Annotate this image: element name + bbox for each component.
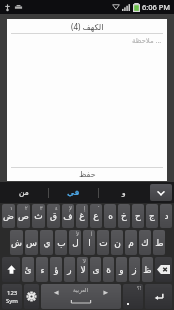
staticText: ظ	[143, 265, 152, 275]
staticText: و	[119, 265, 124, 275]
staticText: ف	[63, 211, 73, 221]
button[interactable]: ح	[132, 204, 144, 228]
button[interactable]: ة	[103, 257, 114, 282]
staticText: ح	[135, 211, 141, 221]
staticText: الكهف (4)	[71, 21, 104, 32]
button[interactable]: خ	[118, 204, 130, 228]
staticText: لأ	[76, 231, 79, 237]
staticText: ك	[141, 238, 149, 248]
staticText: ض	[3, 211, 14, 221]
staticText: و	[122, 188, 126, 197]
staticText: ط	[155, 238, 164, 248]
staticText: ١	[10, 205, 13, 211]
other: Space	[41, 284, 121, 309]
staticText: ٤	[55, 205, 58, 211]
staticText: ه	[108, 211, 113, 221]
button[interactable]: ه	[104, 204, 116, 228]
button[interactable]: ؤ	[50, 257, 62, 282]
staticText: س	[26, 238, 37, 248]
staticText: العربية	[73, 287, 89, 293]
button[interactable]: ء	[36, 257, 48, 282]
button[interactable]: أ	[83, 230, 95, 255]
staticText: لإ	[69, 205, 72, 211]
button[interactable]: لإ	[62, 204, 74, 228]
staticText: ؤ	[54, 265, 59, 275]
other: Backspace	[157, 265, 170, 274]
staticText: ر	[67, 265, 72, 275]
button[interactable]: إ	[76, 204, 88, 228]
button[interactable]: ش	[10, 230, 23, 255]
button[interactable]: `	[90, 204, 102, 228]
button[interactable]: ١	[2, 204, 15, 228]
button[interactable]: Settings	[24, 284, 39, 309]
staticText: خ	[121, 211, 127, 221]
button[interactable]: Shift	[2, 257, 20, 282]
staticText: ث	[34, 211, 43, 221]
button[interactable]: س	[25, 230, 38, 255]
staticText: ش	[11, 238, 22, 248]
button[interactable]: Enter	[145, 284, 172, 309]
other: Settings	[26, 291, 37, 302]
staticText: ة	[106, 265, 111, 275]
button[interactable]: ٤	[47, 204, 60, 228]
button[interactable]: د	[160, 204, 172, 228]
staticText: م	[128, 238, 134, 248]
button[interactable]: ك	[139, 230, 151, 255]
staticText: ص	[18, 211, 29, 221]
staticText: `	[98, 205, 100, 212]
staticText: ع	[93, 211, 99, 221]
button[interactable]: ج	[146, 204, 158, 228]
staticText: لآ	[83, 258, 86, 264]
other: Enter	[153, 291, 165, 303]
staticText: إ	[84, 205, 86, 211]
staticText: Sym	[6, 297, 18, 305]
button[interactable]: حفظ	[7, 168, 167, 181]
staticText: ب	[57, 238, 66, 248]
button[interactable]: Space	[41, 284, 121, 309]
staticText: ز	[132, 265, 137, 275]
button[interactable]: ى	[90, 257, 101, 282]
button[interactable]: في	[49, 182, 98, 203]
button[interactable]: لأ	[69, 230, 81, 255]
staticText: ج	[149, 211, 155, 221]
button[interactable]: ز	[129, 257, 140, 282]
button[interactable]: 123	[2, 284, 22, 309]
staticText: 123	[7, 289, 18, 297]
staticText: ن	[114, 238, 121, 248]
staticText: ء	[40, 265, 45, 275]
staticText: ا	[88, 238, 91, 248]
button[interactable]: لآ	[77, 257, 88, 282]
staticText: 6:06 PM	[142, 2, 171, 12]
staticText: ل	[72, 238, 79, 248]
button[interactable]: من	[0, 182, 48, 203]
button[interactable]: و	[99, 182, 148, 203]
staticText: ؟!	[137, 285, 141, 292]
button[interactable]: م	[125, 230, 137, 255]
staticText: ٣	[40, 205, 43, 211]
staticText: ي	[43, 238, 51, 248]
other: Shift	[6, 264, 17, 275]
button[interactable]: ٢	[17, 204, 30, 228]
button[interactable]: ت	[97, 230, 109, 255]
staticText: في	[67, 188, 80, 197]
staticText: حفظ	[79, 170, 96, 179]
button[interactable]: ي	[40, 230, 53, 255]
staticText: د	[164, 211, 169, 221]
button[interactable]: ؟!	[123, 284, 143, 309]
staticText: غ	[79, 211, 85, 221]
staticText: لا	[80, 265, 86, 275]
button[interactable]: ر	[64, 257, 75, 282]
button[interactable]: ط	[153, 230, 165, 255]
staticText: أ	[91, 231, 93, 237]
button[interactable]: ب	[55, 230, 67, 255]
button[interactable]: ئ	[22, 257, 34, 282]
staticText: ى	[92, 265, 100, 275]
button[interactable]: و	[116, 257, 127, 282]
button[interactable]: ن	[111, 230, 123, 255]
button[interactable]: Expand suggestions	[150, 184, 172, 201]
button[interactable]: ظ	[142, 257, 153, 282]
staticText: ملاحظة ...	[132, 36, 162, 46]
button[interactable]: Backspace	[155, 257, 172, 282]
staticText: ق	[50, 211, 57, 221]
button[interactable]: ٣	[32, 204, 45, 228]
